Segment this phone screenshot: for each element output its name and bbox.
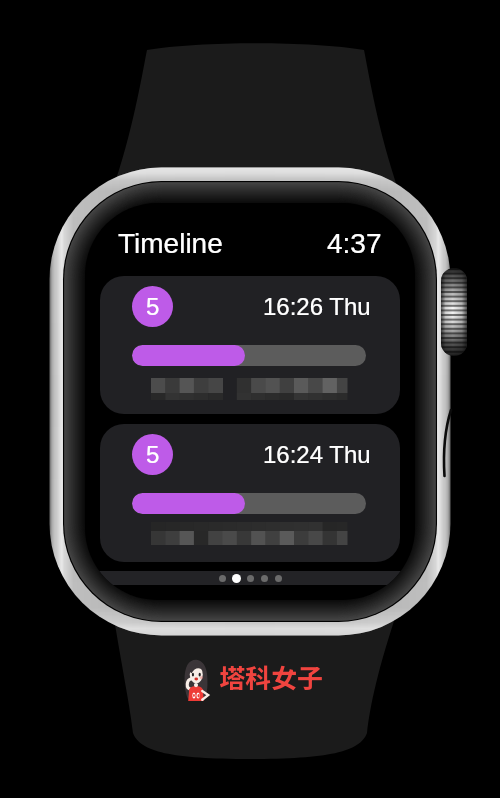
staticText: 16:26 Thu: [263, 293, 371, 320]
button[interactable]: 5: [100, 424, 400, 562]
staticText: 5: [146, 293, 160, 320]
staticText: 5: [146, 441, 160, 468]
staticText: Timeline: [118, 228, 223, 259]
button[interactable]: 5: [100, 276, 400, 414]
staticText: 塔科女子: [219, 658, 324, 696]
staticText: 4:37: [327, 228, 382, 259]
staticText: 16:24 Thu: [263, 441, 371, 468]
